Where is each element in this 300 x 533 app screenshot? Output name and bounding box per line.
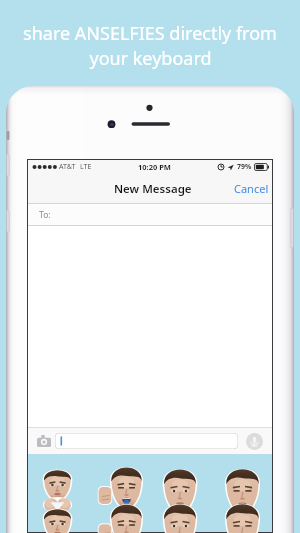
staticText: AT&T [59,162,76,172]
staticText: share ANSELFIES directly from [23,21,277,46]
button[interactable]: Sticker 7 [150,515,211,532]
staticText: To: [39,209,51,221]
button[interactable]: Sticker 1 [28,454,89,515]
staticText: your keyboard [89,46,212,71]
staticText: LTE [80,162,92,172]
button[interactable]: To: [28,204,272,225]
button[interactable]: Sticker 8 [211,515,272,532]
staticText: Cancel [234,181,269,196]
button[interactable]: Sticker 4 [211,454,272,515]
button[interactable]: Cancel [227,176,272,201]
button[interactable]: Sticker 2 [89,454,150,515]
staticText: 10:20 PM [138,162,171,172]
button[interactable]: Record voice message [246,433,263,450]
staticText: New Message [114,181,192,197]
button[interactable]: Sticker 3 [150,454,211,515]
button[interactable] [55,433,238,449]
button[interactable]: Take photo [37,435,51,447]
button[interactable]: Sticker 6 [89,515,150,532]
staticText: 79% [237,162,252,172]
button[interactable]: Sticker 5 [28,515,89,532]
